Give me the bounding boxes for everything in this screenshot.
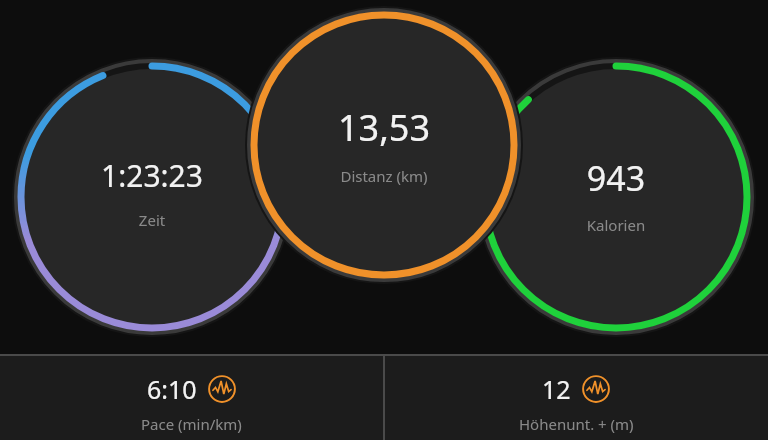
staticText: 6:10 bbox=[147, 372, 197, 406]
button[interactable]: 6:10 bbox=[0, 356, 383, 440]
staticText: 1:23:23 bbox=[42, 155, 262, 196]
other: Activity graph bbox=[207, 374, 237, 404]
button[interactable]: Kalorien 943 bbox=[506, 155, 726, 235]
staticText: Höhenunt. + (m) bbox=[519, 414, 634, 434]
staticText: 12 bbox=[542, 372, 571, 406]
staticText: Distanz (km) bbox=[274, 166, 494, 186]
staticText: Zeit bbox=[42, 210, 262, 230]
button[interactable]: 12 bbox=[385, 356, 768, 440]
staticText: Kalorien bbox=[506, 215, 726, 235]
staticText: 13,53 bbox=[274, 103, 494, 152]
staticText: Pace (min/km) bbox=[141, 414, 242, 434]
other: Activity graph bbox=[581, 374, 611, 404]
button[interactable]: Distanz 13,53 km bbox=[274, 103, 494, 186]
staticText: 943 bbox=[506, 155, 726, 201]
button[interactable]: Zeit 1:23:23 bbox=[42, 155, 262, 230]
